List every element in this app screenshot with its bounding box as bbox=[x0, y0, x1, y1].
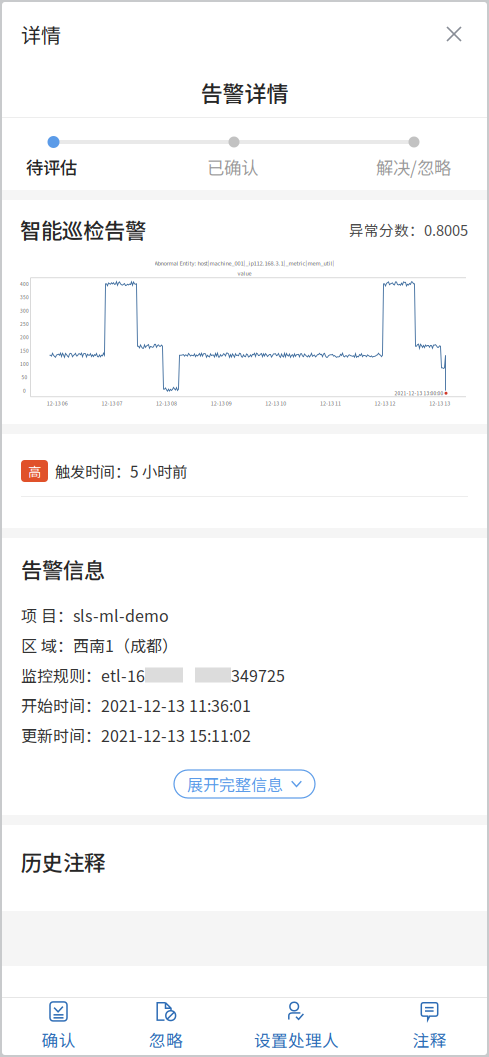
staticText: 详情 bbox=[21, 19, 61, 48]
staticText: 50 bbox=[21, 374, 27, 381]
staticText: 忽略 bbox=[149, 1027, 183, 1051]
staticText: 12-13 12 bbox=[375, 399, 396, 407]
staticText: 200 bbox=[20, 334, 29, 341]
staticText: 12-13 11 bbox=[320, 399, 341, 407]
button[interactable]: 展开完整信息 bbox=[174, 770, 315, 798]
staticText: 250 bbox=[20, 320, 29, 327]
staticText: 高 bbox=[28, 461, 41, 481]
staticText: 12-13 10 bbox=[265, 399, 286, 407]
staticText: 350 bbox=[20, 294, 29, 301]
staticText: 0 bbox=[23, 387, 26, 394]
staticText: 展开完整信息 bbox=[187, 772, 283, 796]
staticText: 150 bbox=[20, 347, 29, 354]
staticText: 设置处理人 bbox=[254, 1027, 339, 1051]
staticText: 100 bbox=[20, 360, 29, 367]
staticText: Abnormal Entity: host|machine_001|_ip112… bbox=[154, 259, 334, 267]
staticText: 项 目： bbox=[21, 603, 73, 627]
staticText: 12-13 07 bbox=[101, 399, 122, 407]
staticText: 注释 bbox=[412, 1027, 446, 1051]
staticText: 告警信息 bbox=[21, 554, 105, 584]
staticText: 确认 bbox=[41, 1027, 75, 1051]
button[interactable]: 设置处理人 bbox=[215, 998, 378, 1054]
staticText: 400 bbox=[20, 280, 29, 287]
staticText: 开始时间： bbox=[21, 693, 101, 717]
staticText: 更新时间： bbox=[21, 723, 101, 747]
button[interactable]: 忽略 bbox=[117, 998, 215, 1054]
staticText: 智能巡检告警 bbox=[20, 214, 146, 245]
staticText: etl-16 bbox=[101, 663, 145, 687]
staticText: sls-ml-demo bbox=[73, 603, 169, 627]
staticText: 解决/忽略 bbox=[376, 154, 451, 180]
staticText: 12-13 09 bbox=[211, 399, 232, 407]
staticText: 异常分数：0.8005 bbox=[349, 219, 468, 240]
staticText: 已确认 bbox=[207, 154, 258, 180]
staticText: 西南1（成都） bbox=[73, 633, 178, 657]
button[interactable]: 确认 bbox=[0, 998, 117, 1054]
staticText: 告警详情 bbox=[200, 77, 288, 108]
staticText: 监控规则： bbox=[21, 663, 101, 687]
staticText: 300 bbox=[20, 307, 29, 314]
staticText: 区 域： bbox=[21, 633, 73, 657]
staticText: 2021-12-13 13:00:00 bbox=[394, 390, 443, 397]
staticText: value bbox=[237, 269, 251, 277]
staticText: 2021-12-13 15:11:02 bbox=[101, 723, 251, 747]
button[interactable]: 注释 bbox=[378, 998, 481, 1054]
staticText: 历史注释 bbox=[21, 846, 105, 877]
staticText: 触发时间：5 小时前 bbox=[55, 460, 187, 482]
button[interactable]: 关闭 bbox=[437, 17, 471, 51]
staticText: 12-13 13 bbox=[429, 399, 450, 407]
staticText: 12-13 08 bbox=[156, 399, 177, 407]
staticText: 12-13 06 bbox=[47, 399, 68, 407]
staticText: 待评估 bbox=[26, 154, 77, 180]
staticText: 349725 bbox=[231, 663, 285, 687]
staticText: 2021-12-13 11:36:01 bbox=[101, 693, 251, 717]
